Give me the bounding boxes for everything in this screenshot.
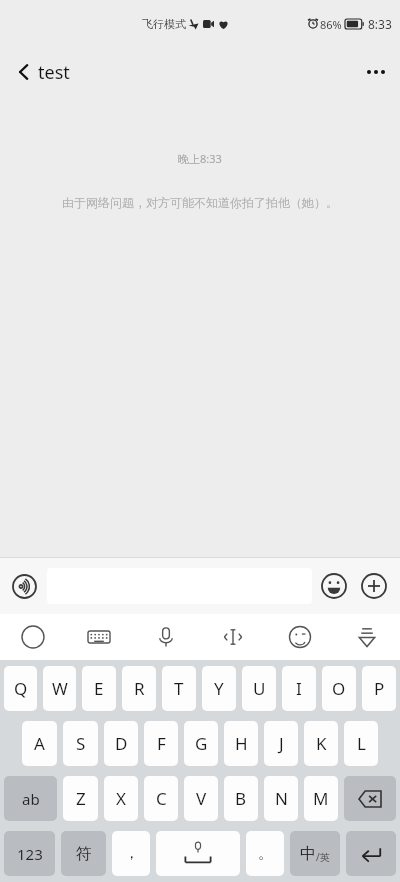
staticText: F <box>157 732 166 755</box>
button[interactable]: V <box>184 776 218 821</box>
staticText: O <box>332 677 346 700</box>
button[interactable]: I <box>282 666 316 711</box>
staticText: 中 <box>300 844 316 864</box>
staticText: R <box>134 677 145 700</box>
staticText: J <box>279 732 284 755</box>
button[interactable]: D <box>104 721 138 766</box>
button[interactable]: More options <box>352 48 400 96</box>
button[interactable]: B <box>224 776 258 821</box>
button[interactable]: H <box>224 721 258 766</box>
staticText: V <box>196 787 207 810</box>
button[interactable]: A <box>22 721 57 766</box>
staticText: 飞行模式 <box>142 17 186 31</box>
button[interactable]: W <box>43 666 76 711</box>
button[interactable]: K <box>304 721 338 766</box>
button[interactable]: S <box>63 721 98 766</box>
button[interactable]: G <box>184 721 218 766</box>
button[interactable]: X <box>104 776 138 821</box>
staticText: C <box>156 787 167 810</box>
button[interactable]: M <box>304 776 338 821</box>
staticText: 123 <box>17 844 43 864</box>
staticText: A <box>34 732 45 755</box>
button[interactable]: ， <box>112 831 150 876</box>
staticText: Q <box>14 677 28 700</box>
button[interactable]: Emoji <box>266 614 333 660</box>
button[interactable]: C <box>144 776 178 821</box>
button[interactable]: Z <box>63 776 98 821</box>
button[interactable]: Q <box>4 666 37 711</box>
staticText: 8:33 <box>368 16 392 32</box>
button[interactable]: Voice <box>132 614 199 660</box>
staticText: 由于网络问题，对方可能不知道你拍了拍他（她）。 <box>62 195 338 210</box>
button[interactable]: 符 <box>61 831 106 876</box>
button[interactable]: F <box>144 721 178 766</box>
button[interactable]: E <box>82 666 116 711</box>
staticText: G <box>195 732 208 755</box>
button[interactable]: Enter <box>346 831 396 876</box>
button[interactable]: More functions <box>356 568 392 604</box>
button[interactable]: T <box>162 666 196 711</box>
button[interactable]: Hide keyboard <box>333 614 400 660</box>
button[interactable]: N <box>264 776 298 821</box>
button[interactable]: Keyboard <box>66 614 132 660</box>
button[interactable]: 123 <box>4 831 55 876</box>
staticText: 晚上8:33 <box>178 151 222 166</box>
button[interactable]: 中 <box>290 831 340 876</box>
staticText: E <box>94 677 104 700</box>
staticText: 。 <box>258 844 273 863</box>
staticText: I <box>296 677 302 700</box>
staticText: ， <box>124 844 139 863</box>
staticText: P <box>374 677 385 700</box>
button[interactable]: Text cursor <box>199 614 266 660</box>
button[interactable]: J <box>264 721 298 766</box>
staticText: X <box>116 787 126 810</box>
staticText: 86% <box>320 17 342 32</box>
button[interactable]: U <box>242 666 276 711</box>
staticText: test <box>38 60 70 85</box>
staticText: Y <box>214 677 224 700</box>
button[interactable]: Space <box>156 831 240 876</box>
button[interactable]: P <box>362 666 396 711</box>
button[interactable]: Input method <box>0 614 66 660</box>
button[interactable]: L <box>344 721 378 766</box>
staticText: W <box>52 677 68 700</box>
button[interactable]: O <box>322 666 356 711</box>
staticText: N <box>275 787 288 810</box>
staticText: M <box>313 787 329 810</box>
staticText: T <box>174 677 184 700</box>
button[interactable]: Emoji <box>316 568 352 604</box>
staticText: ab <box>22 789 40 809</box>
staticText: L <box>357 732 366 755</box>
staticText: 符 <box>76 844 92 864</box>
staticText: /英 <box>316 850 330 864</box>
button[interactable]: Voice input <box>6 568 42 604</box>
button[interactable]: 。 <box>246 831 284 876</box>
staticText: Z <box>76 787 86 810</box>
button[interactable]: Backspace <box>344 776 396 821</box>
staticText: U <box>253 677 266 700</box>
staticText: S <box>76 732 86 755</box>
staticText: B <box>235 787 247 810</box>
staticText: H <box>235 732 248 755</box>
button[interactable]: Y <box>202 666 236 711</box>
staticText: D <box>115 732 128 755</box>
staticText: K <box>316 732 327 755</box>
button[interactable]: ab <box>4 776 57 821</box>
button[interactable]: R <box>122 666 156 711</box>
button[interactable]: Back <box>0 48 48 96</box>
